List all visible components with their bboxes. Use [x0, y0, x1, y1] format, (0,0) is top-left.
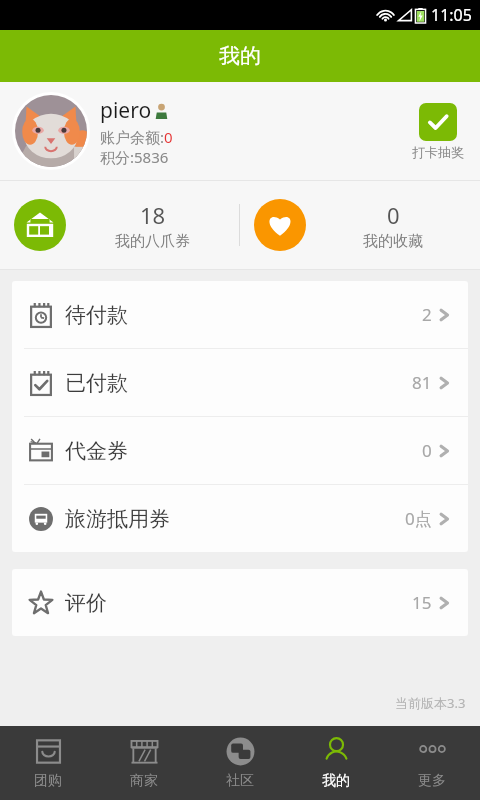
staticText: 我的八爪券	[115, 232, 190, 251]
staticText: 我的	[219, 43, 261, 69]
staticText: 0	[387, 200, 400, 230]
button[interactable]: 我的	[288, 726, 384, 800]
button[interactable]: 社区	[192, 726, 288, 800]
button[interactable]: 代金券	[12, 417, 468, 484]
staticText: 团购	[34, 772, 62, 790]
staticText: 当前版本3.3	[395, 694, 466, 712]
button[interactable]: 评价	[12, 569, 468, 636]
button[interactable]: 更多	[384, 726, 480, 800]
button[interactable]: 打卡抽奖	[408, 99, 468, 164]
button[interactable]: 待付款	[12, 281, 468, 348]
staticText: 账户余额:0	[100, 127, 173, 147]
staticText: 打卡抽奖	[412, 144, 464, 160]
staticText: 代金券	[65, 438, 128, 464]
button[interactable]: 商家	[96, 726, 192, 800]
staticText: 更多	[418, 772, 446, 790]
staticText: 旅游抵用券	[65, 506, 170, 532]
staticText: 2	[422, 303, 432, 326]
staticText: 我的	[322, 772, 350, 790]
staticText: 商家	[130, 772, 158, 790]
staticText: 积分:5836	[100, 147, 169, 167]
staticText: 11:05	[431, 4, 472, 26]
staticText: 评价	[65, 590, 107, 616]
staticText: 18	[140, 200, 166, 230]
staticText: 我的收藏	[363, 232, 423, 251]
button[interactable]: 0	[240, 181, 480, 269]
staticText: piero	[100, 96, 152, 125]
staticText: 已付款	[65, 370, 128, 396]
button[interactable]: Avatar	[12, 92, 90, 170]
button[interactable]: 团购	[0, 726, 96, 800]
button[interactable]: 18	[0, 181, 239, 269]
staticText: 81	[412, 371, 432, 394]
staticText: 待付款	[65, 302, 128, 328]
staticText: 0	[422, 439, 432, 462]
staticText: 15	[412, 591, 432, 614]
button[interactable]: 旅游抵用券	[12, 485, 468, 552]
button[interactable]: 已付款	[12, 349, 468, 416]
staticText: 0点	[405, 507, 432, 530]
staticText: 社区	[226, 772, 254, 790]
